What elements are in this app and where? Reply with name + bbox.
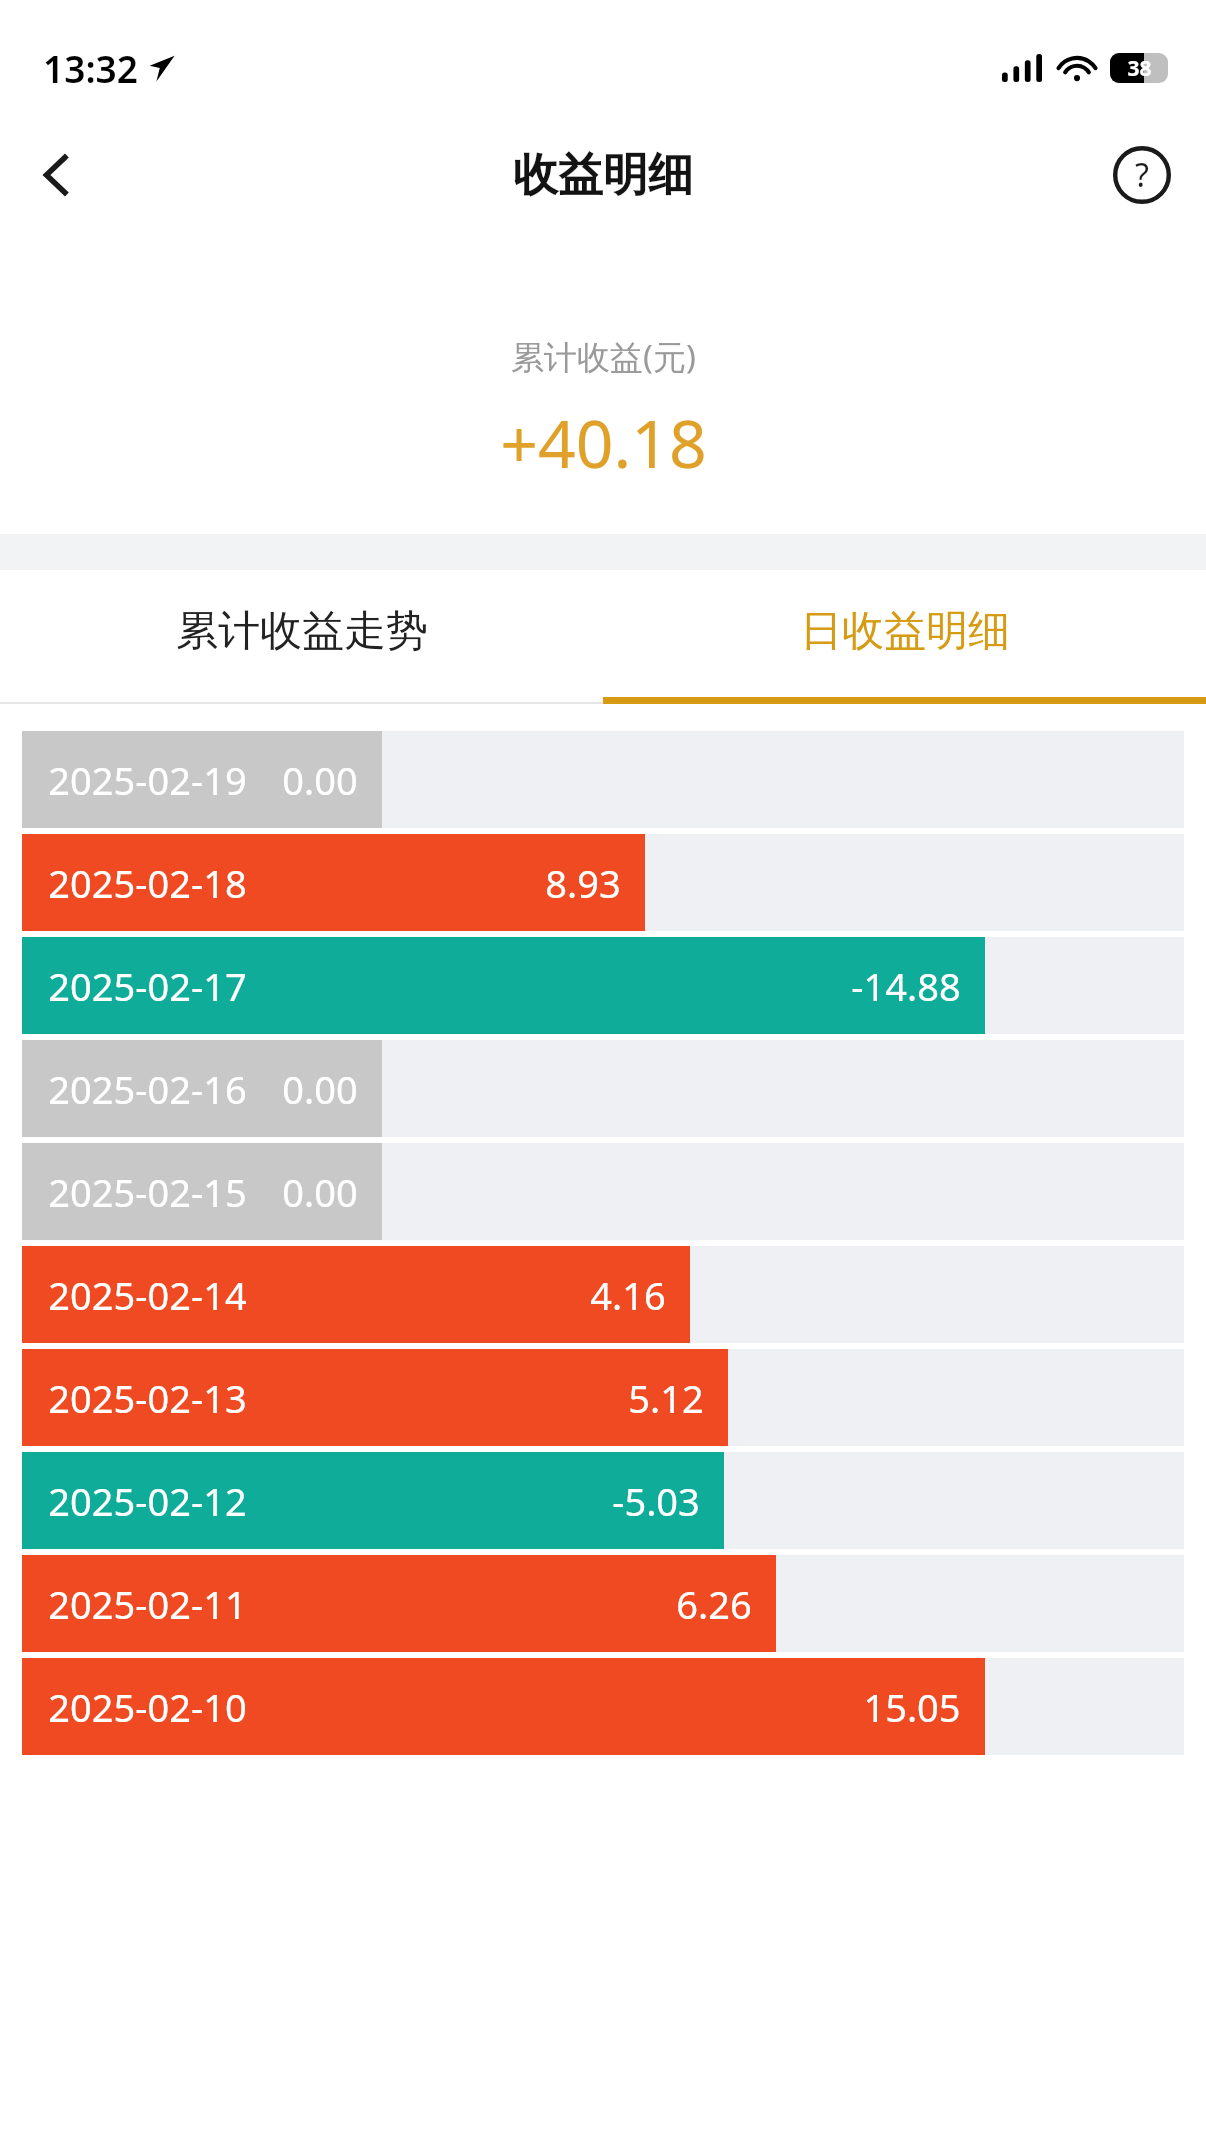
button[interactable]: 2025-02-18 [22, 834, 1184, 931]
staticText: 累计收益走势 [176, 605, 428, 658]
staticText: 2025-02-15 [48, 1166, 247, 1218]
button[interactable]: 2025-02-16 [22, 1040, 1184, 1137]
staticText: 2025-02-12 [48, 1475, 247, 1527]
button[interactable]: 日收益明细 [603, 570, 1206, 704]
staticText: 日收益明细 [800, 605, 1010, 658]
button[interactable]: 2025-02-19 [22, 731, 1184, 828]
staticText: 2025-02-19 [48, 754, 247, 806]
staticText: 15.05 [863, 1681, 961, 1733]
button[interactable]: 2025-02-15 [22, 1143, 1184, 1240]
staticText: 4.16 [590, 1269, 666, 1321]
staticText: 13:32 [43, 43, 138, 93]
staticText: ? [1135, 153, 1149, 197]
staticText: 5.12 [628, 1372, 704, 1424]
staticText: 2025-02-11 [48, 1578, 247, 1630]
staticText: +40.18 [500, 397, 707, 487]
staticText: 8.93 [545, 857, 621, 909]
button[interactable]: 2025-02-11 [22, 1555, 1184, 1652]
staticText: -5.03 [612, 1475, 700, 1527]
button[interactable]: Help [1104, 137, 1180, 213]
staticText: 0.00 [282, 1166, 358, 1218]
button[interactable]: 累计收益走势 [0, 570, 603, 704]
staticText: 2025-02-10 [48, 1681, 247, 1733]
staticText: 0.00 [282, 1063, 358, 1115]
button[interactable]: 2025-02-14 [22, 1246, 1184, 1343]
button[interactable]: 2025-02-12 [22, 1452, 1184, 1549]
staticText: 2025-02-17 [48, 960, 247, 1012]
staticText: 2025-02-14 [48, 1269, 247, 1321]
button[interactable]: Back [18, 136, 96, 214]
staticText: 6.26 [676, 1578, 752, 1630]
staticText: 收益明细 [513, 147, 693, 204]
staticText: 38 [1127, 54, 1152, 83]
staticText: 2025-02-16 [48, 1063, 247, 1115]
staticText: 累计收益(元) [511, 334, 696, 379]
staticText: 0.00 [282, 754, 358, 806]
staticText: -14.88 [851, 960, 961, 1012]
button[interactable]: 2025-02-17 [22, 937, 1184, 1034]
button[interactable]: 2025-02-10 [22, 1658, 1184, 1755]
button[interactable]: 2025-02-13 [22, 1349, 1184, 1446]
staticText: 2025-02-18 [48, 857, 247, 909]
staticText: 2025-02-13 [48, 1372, 247, 1424]
